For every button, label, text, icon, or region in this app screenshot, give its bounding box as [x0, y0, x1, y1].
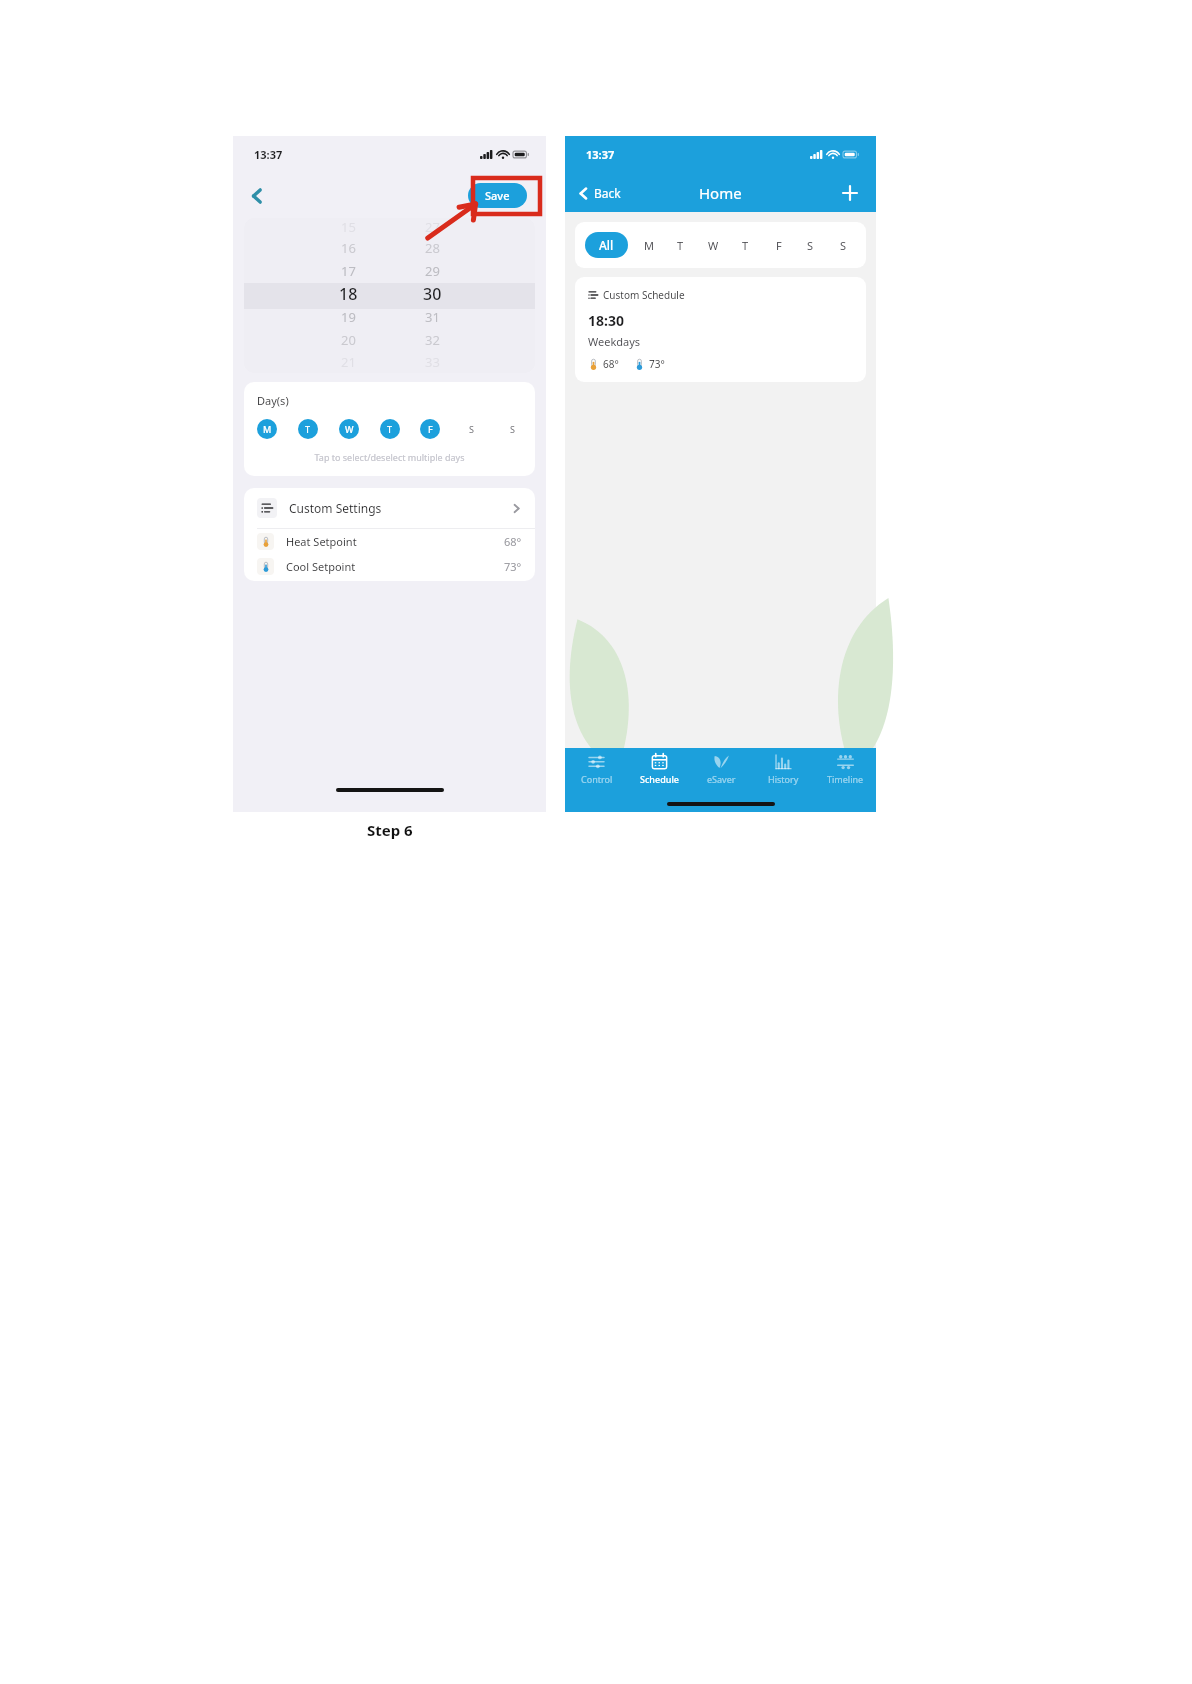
staticText: T [305, 423, 311, 435]
staticText: S [807, 238, 814, 253]
button[interactable]: Schedule [628, 748, 690, 794]
button[interactable]: M [636, 233, 661, 258]
button[interactable]: Custom Settings [244, 488, 535, 528]
staticText: W [345, 423, 354, 435]
staticText: 15 [341, 218, 356, 236]
staticText: Custom Schedule [603, 288, 685, 302]
button[interactable]: S [831, 233, 856, 258]
staticText: 30 [423, 283, 442, 305]
staticText: Step 6 [367, 820, 413, 840]
button[interactable]: Timeline [814, 748, 876, 794]
staticText: S [469, 423, 474, 435]
staticText: 32 [425, 331, 440, 349]
staticText: Schedule [640, 773, 679, 785]
staticText: 33 [425, 353, 440, 371]
staticText: Control [581, 773, 613, 785]
staticText: 21 [341, 353, 356, 371]
staticText: 18:30 [588, 311, 624, 330]
staticText: Weekdays [588, 334, 641, 349]
staticText: F [776, 238, 782, 253]
button[interactable]: Save [468, 183, 527, 208]
button[interactable]: T [298, 419, 318, 439]
staticText: Custom Settings [289, 500, 382, 516]
staticText: 16 [341, 239, 356, 257]
staticText: Heat Setpoint [286, 534, 357, 549]
button[interactable]: M [257, 419, 277, 439]
staticText: F [428, 423, 433, 435]
button[interactable]: T [733, 233, 758, 258]
button[interactable]: Custom Schedule [575, 277, 866, 382]
staticText: Tap to select/deselect multiple days [257, 451, 522, 463]
button[interactable]: Heat Setpoint [244, 529, 535, 554]
staticText: eSaver [707, 773, 736, 785]
staticText: 19 [341, 308, 356, 326]
staticText: 13:37 [254, 147, 283, 162]
staticText: 31 [425, 308, 440, 326]
button[interactable]: W [701, 233, 726, 258]
staticText: M [263, 423, 272, 435]
button[interactable]: All [585, 232, 628, 258]
button[interactable]: Cool Setpoint [244, 554, 535, 579]
button[interactable]: F [766, 233, 791, 258]
button[interactable]: Back [573, 180, 625, 206]
button[interactable]: History [752, 748, 814, 794]
staticText: T [742, 238, 749, 253]
staticText: 68° [504, 534, 522, 549]
staticText: 27 [425, 218, 440, 236]
staticText: Cool Setpoint [286, 559, 356, 574]
button[interactable]: eSaver [690, 748, 752, 794]
staticText: S [840, 238, 847, 253]
button[interactable]: S [502, 419, 522, 439]
button[interactable]: S [461, 419, 481, 439]
staticText: Day(s) [257, 393, 289, 408]
staticText: 17 [341, 262, 356, 280]
button[interactable]: T [668, 233, 693, 258]
button[interactable]: T [380, 419, 400, 439]
staticText: 73° [504, 559, 522, 574]
staticText: Save [485, 188, 510, 203]
staticText: T [387, 423, 393, 435]
staticText: Home [699, 183, 742, 203]
staticText: 20 [341, 331, 356, 349]
staticText: 68° [603, 357, 619, 371]
staticText: 18 [339, 283, 358, 305]
button[interactable]: W [339, 419, 359, 439]
staticText: 28 [425, 239, 440, 257]
staticText: M [644, 238, 654, 253]
staticText: 73° [649, 357, 665, 371]
staticText: Timeline [827, 773, 864, 785]
staticText: 29 [425, 262, 440, 280]
staticText: History [768, 773, 799, 785]
button[interactable]: Control [565, 748, 628, 794]
staticText: T [677, 238, 684, 253]
button[interactable]: Back [242, 181, 272, 211]
staticText: Back [594, 185, 621, 201]
staticText: S [510, 423, 515, 435]
staticText: 13:37 [586, 147, 615, 162]
button[interactable]: S [798, 233, 823, 258]
button[interactable]: Add schedule [837, 180, 863, 206]
staticText: All [599, 237, 614, 253]
button[interactable]: F [420, 419, 440, 439]
staticText: W [708, 238, 719, 253]
